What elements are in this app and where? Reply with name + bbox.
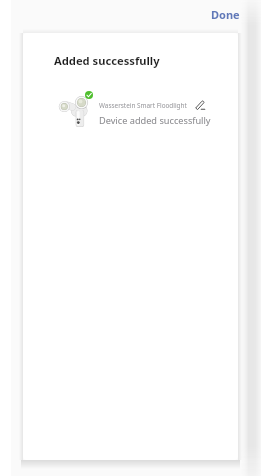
staticText: Done — [211, 7, 240, 22]
button[interactable]: Rename device — [195, 100, 205, 110]
button[interactable]: Done — [202, 2, 249, 27]
staticText: Added successfully — [54, 53, 160, 68]
staticText: Device added successfully — [99, 114, 211, 127]
staticText: Wasserstein Smart Floodlight — [99, 101, 187, 110]
